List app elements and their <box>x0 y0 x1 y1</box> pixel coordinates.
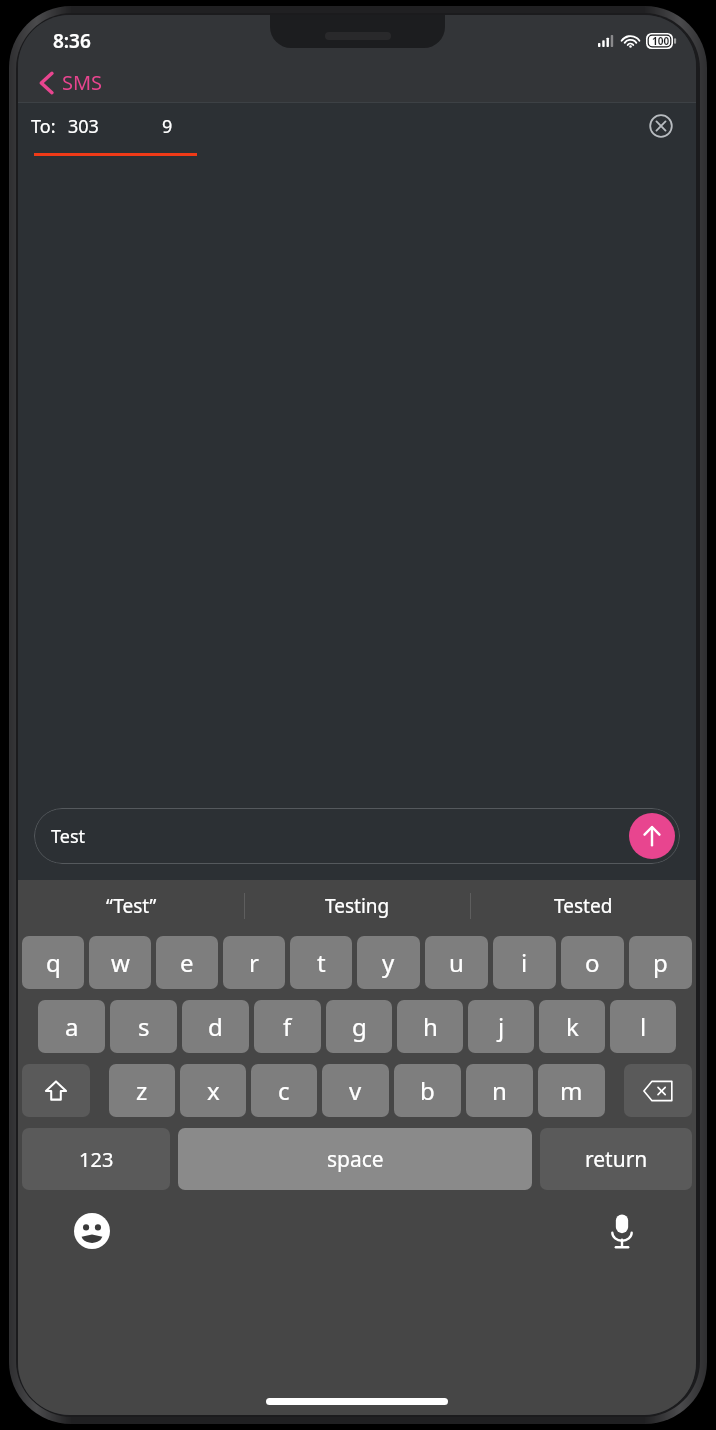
button[interactable]: i <box>493 936 556 989</box>
staticText: j <box>498 1010 505 1043</box>
staticText: 303 <box>68 114 99 139</box>
staticText: t <box>317 946 326 979</box>
button[interactable]: b <box>394 1064 461 1117</box>
staticText: m <box>560 1074 583 1107</box>
staticText: n <box>492 1074 507 1107</box>
button[interactable]: Test <box>34 808 680 864</box>
staticText: g <box>352 1010 367 1043</box>
button[interactable]: 123 <box>22 1128 170 1190</box>
staticText: space <box>327 1145 384 1174</box>
button[interactable]: h <box>397 1000 463 1053</box>
staticText: v <box>349 1074 362 1107</box>
button[interactable]: q <box>22 936 84 989</box>
button[interactable]: return <box>540 1128 692 1190</box>
staticText: b <box>420 1074 435 1107</box>
button[interactable]: g <box>326 1000 392 1053</box>
button[interactable]: p <box>629 936 692 989</box>
button[interactable]: r <box>223 936 285 989</box>
staticText: q <box>46 946 61 979</box>
button[interactable]: j <box>468 1000 534 1053</box>
button[interactable]: l <box>610 1000 676 1053</box>
staticText: k <box>566 1010 579 1043</box>
button[interactable]: a <box>38 1000 105 1053</box>
button[interactable]: e <box>156 936 218 989</box>
button[interactable]: Emoji <box>70 1209 114 1253</box>
button[interactable]: SMS <box>32 65 111 100</box>
button[interactable]: t <box>290 936 352 989</box>
staticText: z <box>136 1074 148 1107</box>
button[interactable]: s <box>110 1000 177 1053</box>
staticText: h <box>423 1010 438 1043</box>
button[interactable]: Clear recipient <box>644 109 678 143</box>
staticText: s <box>138 1010 150 1043</box>
button[interactable]: “Test” <box>18 880 244 932</box>
staticText: r <box>249 946 259 979</box>
button[interactable]: Testing <box>245 880 470 932</box>
button[interactable]: y <box>357 936 420 989</box>
button[interactable]: n <box>466 1064 533 1117</box>
staticText: Test <box>51 824 86 849</box>
button[interactable]: w <box>89 936 151 989</box>
button[interactable]: u <box>425 936 488 989</box>
staticText: p <box>653 946 668 979</box>
staticText: w <box>111 946 130 979</box>
staticText: 9 <box>162 114 173 139</box>
button[interactable]: k <box>539 1000 605 1053</box>
button[interactable]: Dictation <box>600 1209 644 1253</box>
staticText: c <box>278 1074 290 1107</box>
button[interactable]: x <box>180 1064 246 1117</box>
button[interactable]: Shift <box>22 1064 90 1117</box>
button[interactable]: d <box>182 1000 249 1053</box>
staticText: y <box>382 946 395 979</box>
staticText: “Test” <box>106 893 157 919</box>
staticText: a <box>65 1010 79 1043</box>
staticText: 123 <box>79 1146 114 1173</box>
staticText: return <box>585 1145 648 1174</box>
staticText: Testing <box>325 893 390 919</box>
staticText: SMS <box>62 69 103 96</box>
staticText: 8:36 <box>53 28 91 54</box>
staticText: 100 <box>652 34 670 48</box>
staticText: Tested <box>554 893 613 919</box>
button[interactable]: c <box>251 1064 317 1117</box>
button[interactable]: m <box>538 1064 605 1117</box>
button[interactable]: Tested <box>471 880 696 932</box>
staticText: u <box>449 946 464 979</box>
button[interactable]: v <box>322 1064 389 1117</box>
button[interactable]: o <box>561 936 624 989</box>
staticText: o <box>585 946 600 979</box>
staticText: To: <box>31 114 56 139</box>
staticText: e <box>180 946 194 979</box>
button[interactable]: Backspace <box>624 1064 692 1117</box>
button[interactable]: space <box>178 1128 532 1190</box>
staticText: d <box>208 1010 223 1043</box>
button[interactable]: z <box>109 1064 175 1117</box>
staticText: i <box>521 946 528 979</box>
staticText: x <box>207 1074 220 1107</box>
staticText: f <box>283 1010 292 1043</box>
button[interactable]: Send <box>629 813 675 859</box>
staticText: l <box>640 1010 647 1043</box>
button[interactable]: f <box>254 1000 321 1053</box>
